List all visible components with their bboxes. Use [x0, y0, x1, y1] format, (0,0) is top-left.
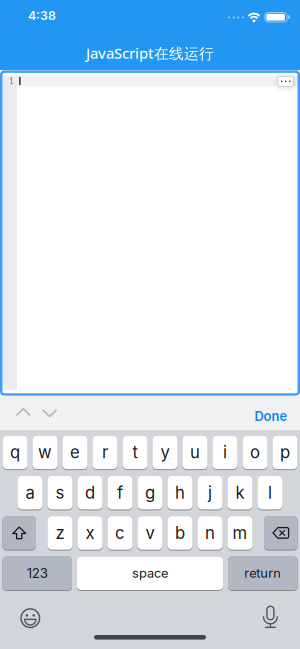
button[interactable]: q: [2, 435, 28, 470]
staticText: m: [232, 523, 247, 543]
staticText: h: [175, 483, 185, 502]
staticText: Done: [254, 409, 287, 424]
button[interactable]: f: [107, 476, 133, 510]
button[interactable]: p: [272, 435, 298, 470]
staticText: a: [25, 483, 34, 502]
button[interactable]: n: [197, 516, 223, 551]
button[interactable]: o: [242, 435, 268, 470]
button[interactable]: e: [62, 435, 88, 470]
staticText: c: [115, 523, 125, 543]
button[interactable]: Shift: [2, 516, 36, 551]
button[interactable]: More options: [277, 76, 294, 87]
button[interactable]: b: [167, 516, 193, 551]
staticText: t: [132, 442, 137, 462]
staticText: JavaScript在线运行: [86, 43, 214, 63]
staticText: w: [38, 442, 52, 462]
staticText: y: [160, 442, 169, 462]
button[interactable]: u: [182, 435, 208, 470]
staticText: space: [132, 566, 168, 581]
button[interactable]: h: [167, 476, 193, 510]
button[interactable]: g: [137, 476, 163, 510]
button[interactable]: Done: [254, 409, 287, 424]
staticText: l: [268, 483, 272, 502]
staticText: s: [55, 483, 64, 502]
button[interactable]: t: [122, 435, 148, 470]
button[interactable]: x: [77, 516, 103, 551]
button[interactable]: k: [227, 476, 253, 510]
staticText: e: [70, 442, 80, 462]
button[interactable]: space: [77, 556, 223, 591]
button[interactable]: 123: [2, 556, 72, 591]
button[interactable]: w: [32, 435, 58, 470]
button[interactable]: return: [228, 556, 298, 591]
button[interactable]: z: [47, 516, 73, 551]
button[interactable]: Emoji: [18, 606, 42, 630]
staticText: 123: [27, 565, 48, 581]
button[interactable]: j: [197, 476, 223, 510]
button[interactable]: Next field: [40, 407, 59, 420]
staticText: x: [85, 523, 94, 543]
staticText: o: [250, 442, 260, 462]
staticText: b: [175, 523, 185, 543]
staticText: k: [235, 483, 244, 502]
button[interactable]: s: [47, 476, 73, 510]
button[interactable]: d: [77, 476, 103, 510]
button[interactable]: y: [152, 435, 178, 470]
button[interactable]: l: [257, 476, 283, 510]
staticText: g: [145, 483, 155, 502]
staticText: n: [205, 523, 215, 543]
staticText: p: [280, 442, 290, 462]
staticText: q: [10, 442, 20, 462]
button[interactable]: r: [92, 435, 118, 470]
staticText: j: [208, 483, 212, 502]
button[interactable]: v: [137, 516, 163, 551]
staticText: d: [85, 483, 95, 502]
button[interactable]: Dictation: [262, 605, 278, 629]
button[interactable]: Previous field: [14, 405, 33, 418]
staticText: z: [55, 523, 64, 543]
button[interactable]: c: [107, 516, 133, 551]
staticText: 4:38: [28, 8, 56, 23]
staticText: u: [190, 442, 200, 462]
button[interactable]: i: [212, 435, 238, 470]
staticText: f: [117, 483, 123, 502]
staticText: r: [102, 442, 108, 462]
staticText: i: [223, 442, 227, 462]
button[interactable]: Delete: [264, 516, 298, 551]
staticText: return: [244, 566, 281, 581]
button[interactable]: m: [227, 516, 253, 551]
button[interactable]: a: [17, 476, 43, 510]
staticText: v: [145, 523, 154, 543]
